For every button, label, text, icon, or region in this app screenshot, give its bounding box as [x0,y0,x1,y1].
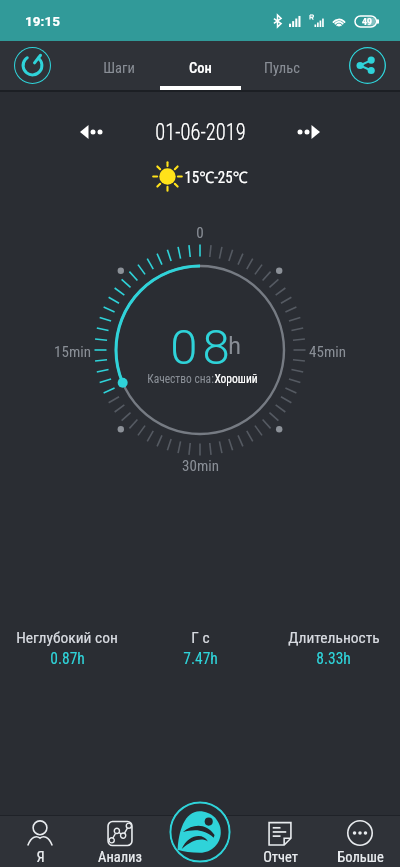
staticText: 15min [54,343,91,361]
button[interactable]: Анализ [80,815,160,867]
staticText: Длительность [288,629,380,647]
staticText: Шаги [103,60,135,77]
button[interactable]: Больше [320,815,400,867]
button[interactable]: Пульс [241,41,322,90]
button[interactable]: Неглубокий сон [0,629,134,667]
button[interactable]: Отчет [240,815,320,867]
staticText: 19:15 [25,13,60,29]
staticText: Я [36,849,45,866]
button[interactable]: Длительность [267,629,400,667]
button[interactable]: Previous day [80,120,110,144]
staticText: 08 [170,319,235,376]
staticText: h [228,333,241,360]
button[interactable]: Сон [160,41,241,90]
button[interactable]: Sync [14,47,51,84]
button[interactable]: Home [169,801,231,863]
button[interactable]: Next day [290,120,320,144]
staticText: 30min [182,457,219,475]
staticText: 01-06-2019 [155,118,246,146]
staticText: 7.47h [183,648,218,668]
staticText: Больше [337,849,384,866]
button[interactable]: Шаги [78,41,160,90]
staticText: Качество сна: [147,371,214,386]
button[interactable]: Я [0,815,80,867]
staticText: 0.87h [50,648,85,668]
staticText: Сон [189,60,212,77]
staticText: 15℃-25℃ [184,166,248,187]
staticText: 49 [362,17,372,27]
button[interactable]: Г с [134,629,267,667]
button[interactable]: Share [349,47,386,84]
staticText: Хороший [214,371,258,386]
staticText: Пульс [264,60,300,77]
staticText: 45min [309,343,346,361]
staticText: Анализ [98,849,142,866]
staticText: Отчет [263,849,298,866]
staticText: 8.33h [316,648,351,668]
staticText: Г с [191,629,210,647]
staticText: 0 [196,224,204,242]
staticText: Неглубокий сон [16,629,118,647]
